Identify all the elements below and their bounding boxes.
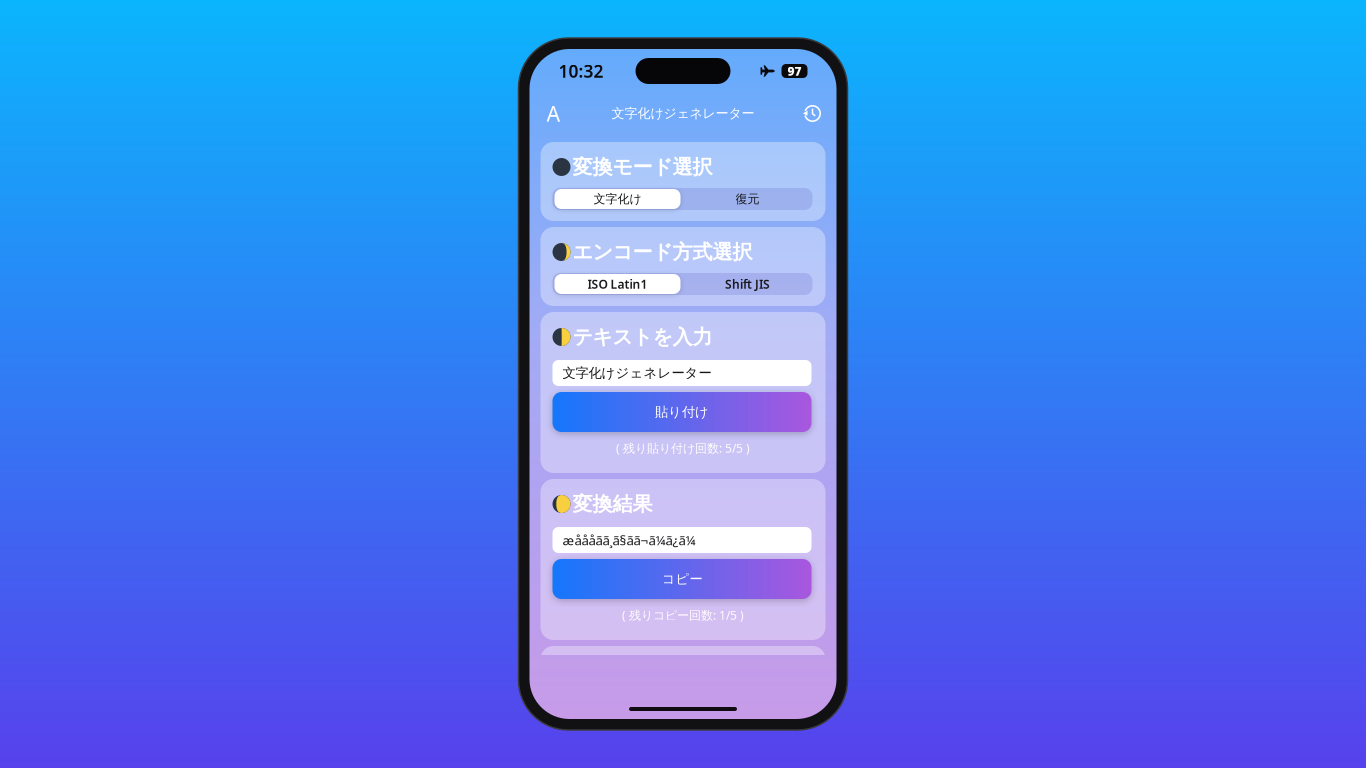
button[interactable]: コピー <box>552 559 811 599</box>
staticText: 文字化け <box>593 192 641 206</box>
staticText: æåååãã¸ã§ãã¬ã¼ã¿ã¼ <box>562 531 695 549</box>
staticText: A <box>546 99 560 128</box>
button[interactable]: ISO Latin1 <box>552 272 682 296</box>
staticText: Shift JIS <box>725 276 770 292</box>
button[interactable]: 復元 <box>682 187 812 211</box>
button[interactable]: History <box>799 100 825 126</box>
staticText: 変換モード選択 <box>572 155 712 179</box>
staticText: ( 残りコピー回数: 1/5 ) <box>622 607 744 623</box>
staticText: 97 <box>787 63 801 79</box>
button[interactable]: Shift JIS <box>682 272 812 296</box>
staticText: ( 残り貼り付け回数: 5/5 ) <box>616 440 750 456</box>
staticText: テキストを入力 <box>572 325 712 349</box>
staticText: 変換結果 <box>572 492 652 516</box>
staticText: 文字化けジェネレーター <box>562 365 711 381</box>
staticText: 貼り付け <box>655 404 709 420</box>
staticText: コピー <box>661 571 702 587</box>
button[interactable]: Text size <box>540 100 566 126</box>
staticText: 文字化けジェネレーター <box>611 105 754 122</box>
button[interactable]: 文字化け <box>552 187 682 211</box>
staticText: エンコード方式選択 <box>572 240 752 264</box>
staticText: 10:32 <box>558 59 603 82</box>
button[interactable]: 貼り付け <box>552 392 811 432</box>
staticText: ISO Latin1 <box>587 276 647 292</box>
staticText: 復元 <box>735 192 759 206</box>
